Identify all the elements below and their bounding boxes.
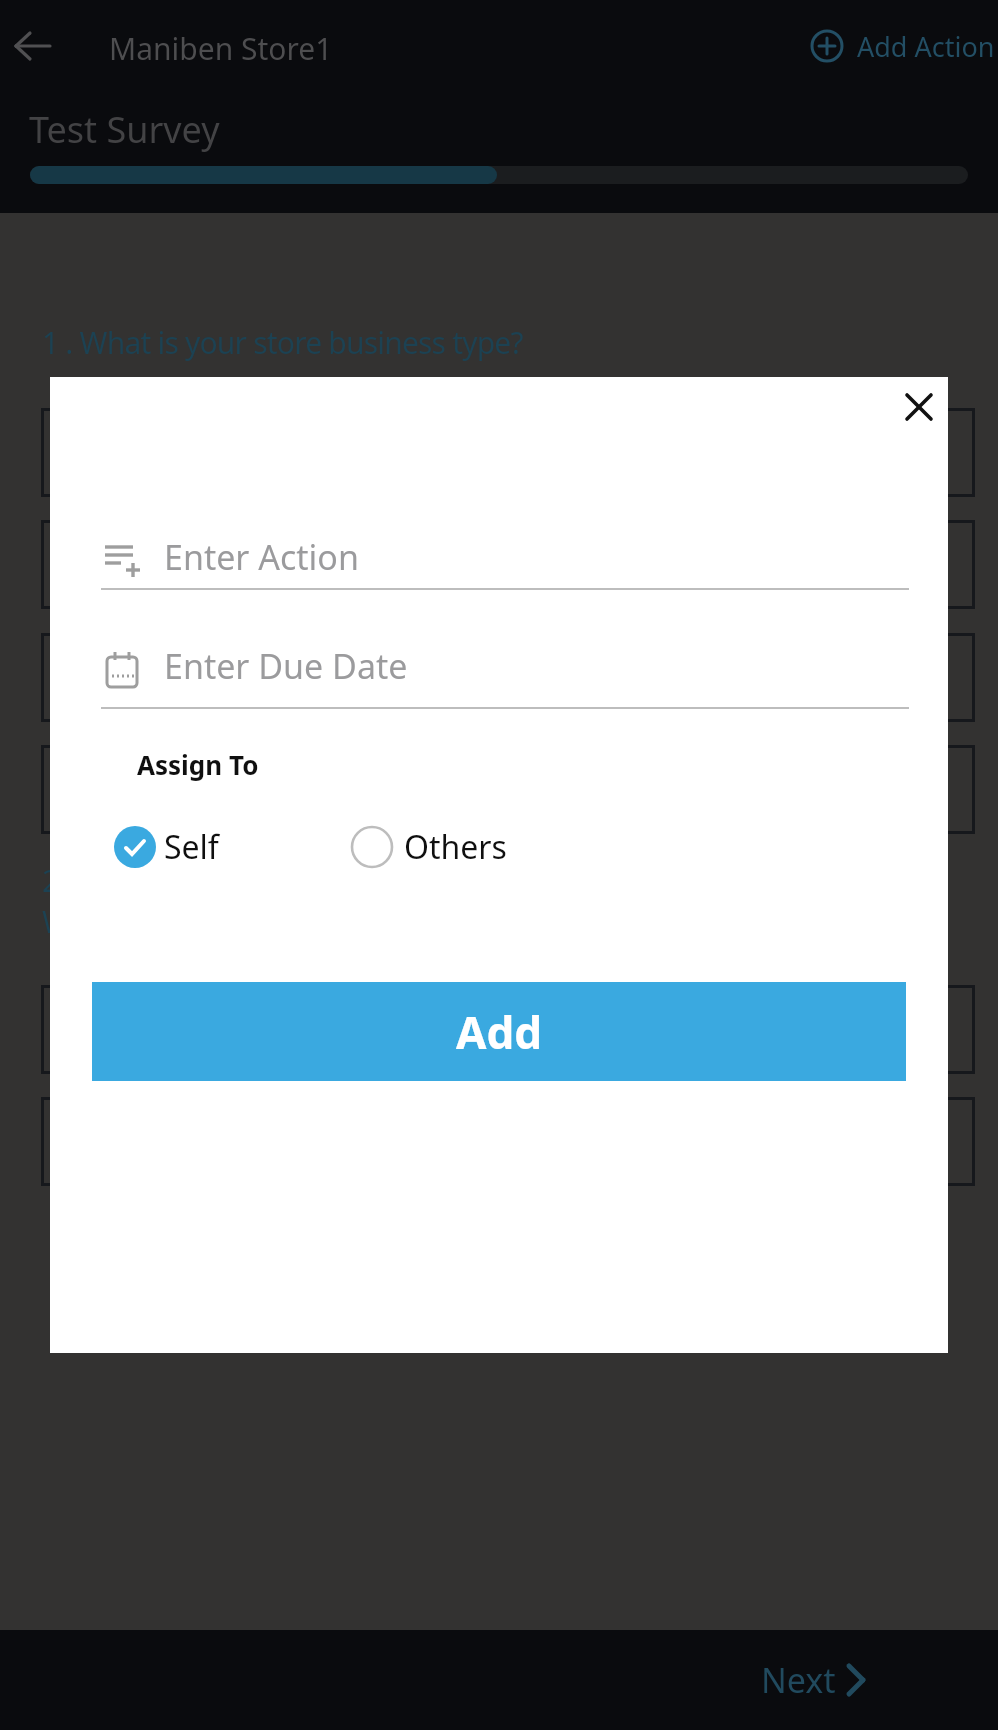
staticText: Assign To xyxy=(137,747,259,782)
staticText: 2 . Wh xyxy=(42,860,130,901)
button[interactable]: Next xyxy=(761,1657,868,1703)
button[interactable]: Enter Due Date xyxy=(101,632,909,706)
staticText: Enter Action xyxy=(164,534,359,580)
button[interactable] xyxy=(41,520,975,609)
staticText: Maniben Store1 xyxy=(109,28,333,69)
button[interactable] xyxy=(41,1097,975,1186)
button[interactable]: Add xyxy=(92,982,906,1081)
staticText: Others xyxy=(404,825,507,869)
button[interactable] xyxy=(904,392,934,422)
button[interactable] xyxy=(41,985,975,1074)
staticText: Self xyxy=(164,825,219,869)
button[interactable]: Others xyxy=(350,821,507,873)
button[interactable] xyxy=(10,31,56,61)
staticText: Next xyxy=(761,1657,836,1703)
staticText: Enter Due Date xyxy=(164,643,408,689)
staticText: Add Action xyxy=(857,28,995,65)
staticText: Add xyxy=(456,1002,543,1062)
button[interactable] xyxy=(41,633,975,722)
button[interactable] xyxy=(41,745,975,834)
button[interactable] xyxy=(41,408,975,497)
button[interactable]: Add Action xyxy=(810,24,995,68)
button[interactable]: Self xyxy=(113,821,219,873)
staticText: 1 . What is your store business type? xyxy=(42,322,523,363)
staticText: Test Survey xyxy=(29,105,220,154)
button[interactable]: Enter Action xyxy=(101,517,909,591)
staticText: Wha xyxy=(42,901,106,942)
